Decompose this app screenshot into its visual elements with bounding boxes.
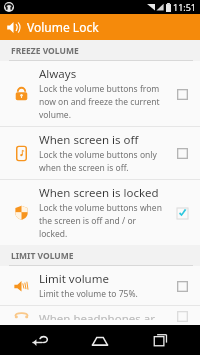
staticText: Always <box>39 66 77 82</box>
staticText: LIMIT VOLUME <box>11 250 74 262</box>
button[interactable]: Back <box>20 325 60 355</box>
other: Lock <box>13 85 30 102</box>
staticText: When screen is locked <box>39 185 159 201</box>
staticText: the screen is off and / or <box>39 215 137 227</box>
staticText: When headphones are… <box>39 311 165 320</box>
staticText: now on and freeze the current <box>39 96 160 108</box>
staticText: Volume Lock <box>27 19 99 35</box>
button[interactable]: When screen is off disabled <box>169 140 195 166</box>
staticText: 11:51 <box>173 1 197 13</box>
other: Screen locked <box>13 204 30 221</box>
button[interactable]: Recent apps <box>140 325 180 355</box>
other: Limit volume <box>13 277 30 294</box>
button[interactable]: Always disabled <box>169 81 195 107</box>
button[interactable]: Lock <box>0 61 200 126</box>
other: Volume Lock <box>6 20 21 35</box>
staticText: volume. <box>39 109 71 121</box>
staticText: Lock the volume buttons from <box>39 83 160 95</box>
staticText: Limit volume <box>39 271 109 287</box>
button[interactable]: Home <box>80 325 120 355</box>
button[interactable]: Limit volume <box>0 266 200 305</box>
button[interactable]: Screen off <box>0 127 200 179</box>
button[interactable]: Volume Lock <box>0 14 200 40</box>
button[interactable]: Screen locked <box>0 180 200 245</box>
staticText: FREEZE VOLUME <box>11 45 79 57</box>
button[interactable]: Limit volume disabled <box>169 273 195 299</box>
staticText: when the screen is off. <box>39 162 129 174</box>
button[interactable]: Headphones <box>0 306 200 325</box>
staticText: Lock the volume buttons when <box>39 202 162 214</box>
staticText: Lock the volume buttons only <box>39 149 157 161</box>
button[interactable]: When screen is locked enabled <box>169 200 195 226</box>
staticText: When screen is off <box>39 132 139 148</box>
staticText: Limit the volume to 75%. <box>39 288 138 300</box>
other: Headphones <box>13 311 30 320</box>
button[interactable]: When headphones are… disabled <box>169 311 195 320</box>
staticText: locked. <box>39 228 68 240</box>
other: Screen off <box>13 145 30 162</box>
